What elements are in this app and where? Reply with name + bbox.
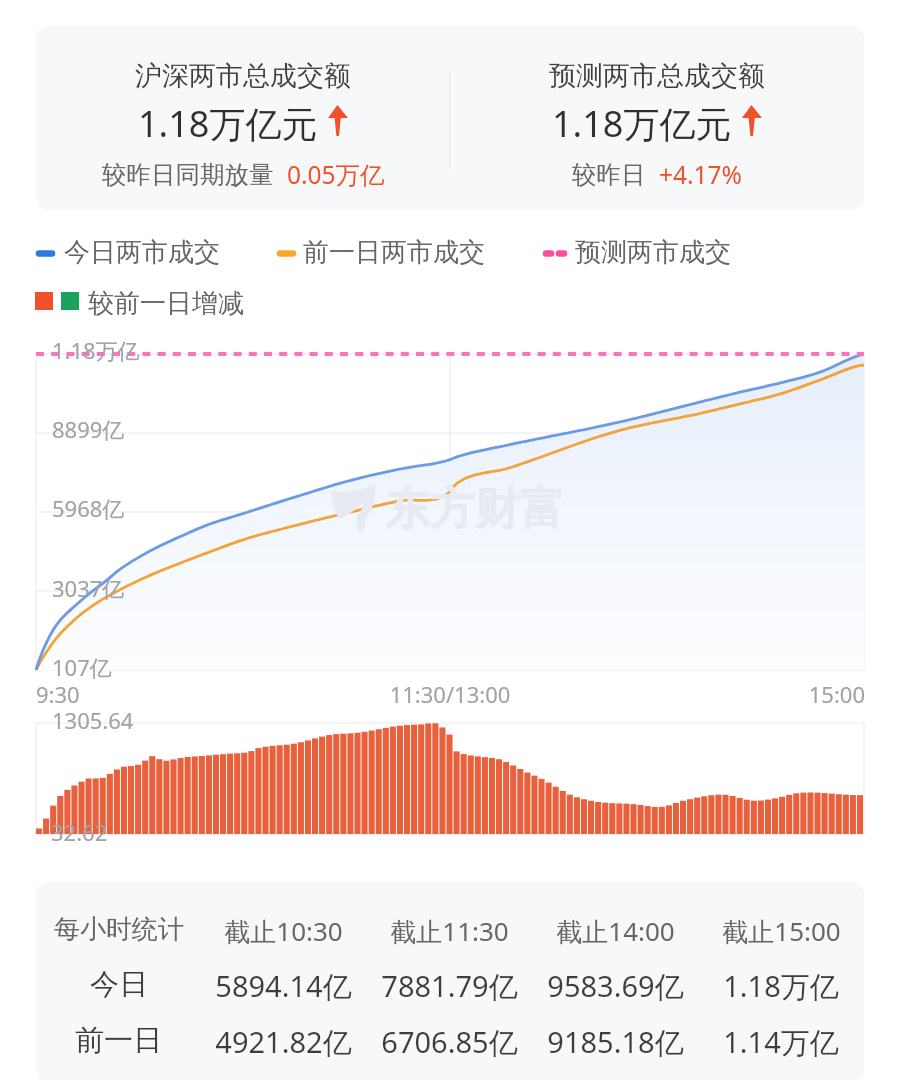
staticText: 1.18万亿 bbox=[52, 335, 140, 365]
staticText: 今日 bbox=[90, 966, 148, 1003]
staticText: 1305.64 bbox=[52, 705, 134, 735]
staticText: 预测两市成交 bbox=[575, 236, 731, 269]
staticText: 较昨日 bbox=[572, 159, 646, 190]
staticText: 4921.82亿 bbox=[215, 1022, 352, 1062]
staticText: 5894.14亿 bbox=[215, 966, 352, 1006]
staticText: +4.17% bbox=[659, 158, 742, 191]
staticText: 1.18万亿 bbox=[723, 966, 839, 1006]
staticText: 今日两市成交 bbox=[64, 236, 220, 269]
button[interactable]: 每小时统计 bbox=[36, 882, 864, 1080]
staticText: 每小时统计 bbox=[54, 913, 184, 946]
staticText: 15:00 bbox=[665, 679, 865, 709]
staticText: 11:30/13:00 bbox=[350, 679, 550, 709]
staticText: 前一日 bbox=[75, 1022, 162, 1059]
staticText: 6706.85亿 bbox=[381, 1022, 518, 1062]
staticText: 预测两市总成交额 bbox=[549, 59, 765, 93]
staticText: 9185.18亿 bbox=[547, 1022, 684, 1062]
staticText: 5968亿 bbox=[52, 493, 125, 523]
staticText: 9583.69亿 bbox=[547, 966, 684, 1006]
staticText: 沪深两市总成交额 bbox=[135, 59, 351, 93]
staticText: 前一日两市成交 bbox=[303, 236, 485, 269]
staticText: 107亿 bbox=[52, 652, 112, 682]
staticText: 0.05万亿 bbox=[287, 158, 385, 191]
staticText: 截止14:00 bbox=[556, 913, 675, 949]
staticText: 9:30 bbox=[36, 679, 80, 709]
staticText: 截止10:30 bbox=[224, 913, 343, 949]
button[interactable]: 沪深两市总成交额 bbox=[36, 26, 864, 210]
staticText: 较前一日增减 bbox=[88, 287, 244, 320]
staticText: 1.18万亿元 bbox=[138, 99, 318, 148]
staticText: 东方财富 bbox=[385, 481, 565, 538]
staticText: 1.14万亿 bbox=[723, 1022, 839, 1062]
staticText: 3037亿 bbox=[52, 573, 125, 603]
staticText: 较昨日同期放量 bbox=[102, 159, 274, 190]
staticText: 1.18万亿元 bbox=[552, 99, 732, 148]
staticText: 截止11:30 bbox=[390, 913, 509, 949]
staticText: 32.62 bbox=[51, 817, 108, 847]
staticText: 8899亿 bbox=[52, 414, 125, 444]
staticText: 截止15:00 bbox=[722, 913, 841, 949]
staticText: 7881.79亿 bbox=[381, 966, 518, 1006]
